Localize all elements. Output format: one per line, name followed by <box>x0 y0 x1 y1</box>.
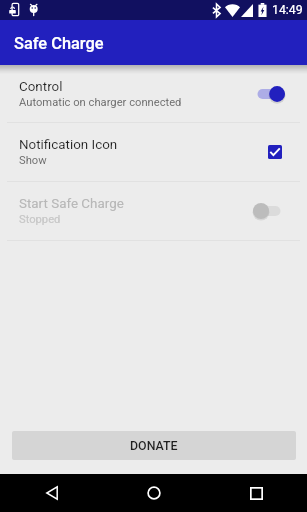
button[interactable]: DONATE <box>12 431 296 460</box>
staticText: Stopped <box>19 213 61 226</box>
staticText: Control <box>19 79 63 95</box>
staticText: Notification Icon <box>19 137 118 153</box>
other: Control switch, on <box>250 83 288 105</box>
staticText: Show <box>19 154 47 167</box>
staticText: DONATE <box>130 438 178 453</box>
button[interactable]: Start Safe Charge <box>0 181 307 240</box>
staticText: 14:49 <box>272 3 303 17</box>
button[interactable]: Notification Icon <box>0 122 307 181</box>
other: Start safe charge switch, off <box>250 200 288 222</box>
staticText: Safe Charge <box>14 34 104 53</box>
button[interactable]: Back <box>0 474 103 512</box>
other: Notification icon checkbox, checked <box>250 141 288 163</box>
button[interactable]: Control <box>0 65 307 122</box>
staticText: Automatic on charger connected <box>19 96 182 109</box>
staticText: Start Safe Charge <box>19 196 124 212</box>
button[interactable]: Recent apps <box>205 474 307 512</box>
button[interactable]: Home <box>103 474 205 512</box>
